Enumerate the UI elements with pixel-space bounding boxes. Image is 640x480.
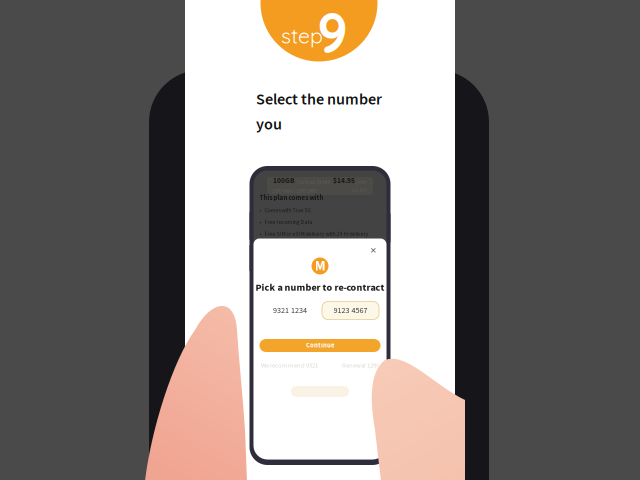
staticText: Contract 24 mth bbox=[297, 179, 331, 186]
staticText: /mth bbox=[356, 179, 367, 186]
button[interactable]: 9321 1234 bbox=[261, 301, 319, 319]
staticText: • Comes with True 5G bbox=[259, 206, 311, 215]
staticText: you bbox=[256, 113, 282, 136]
staticText: Select the number bbox=[256, 88, 382, 111]
staticText: M bbox=[314, 256, 325, 276]
staticText: This plan comes with bbox=[259, 193, 323, 203]
staticText: 500 mins / 500 SMS bbox=[273, 187, 317, 195]
staticText: Renewal 12th bbox=[342, 361, 379, 370]
staticText: $14.95 bbox=[333, 175, 355, 186]
staticText: • Free Incoming Data bbox=[259, 218, 312, 226]
staticText: 9 bbox=[317, 0, 348, 66]
staticText: 9123 4567 bbox=[333, 305, 367, 316]
button[interactable]: Continue bbox=[259, 339, 380, 352]
button[interactable]: Close bbox=[367, 244, 379, 256]
staticText: • Free SIM or eSIM delivery with 24 hr d… bbox=[259, 230, 368, 238]
staticText: ✕ bbox=[370, 246, 377, 255]
staticText: We recommend 9321 bbox=[261, 361, 318, 370]
staticText: 9321 1234 bbox=[273, 305, 307, 316]
staticText: step bbox=[281, 22, 323, 49]
staticText: Pick a number to re-contract bbox=[255, 280, 384, 295]
staticText: 100GB bbox=[273, 175, 295, 186]
button[interactable]: 9123 4567 bbox=[322, 301, 379, 319]
staticText: Continue bbox=[306, 341, 334, 350]
